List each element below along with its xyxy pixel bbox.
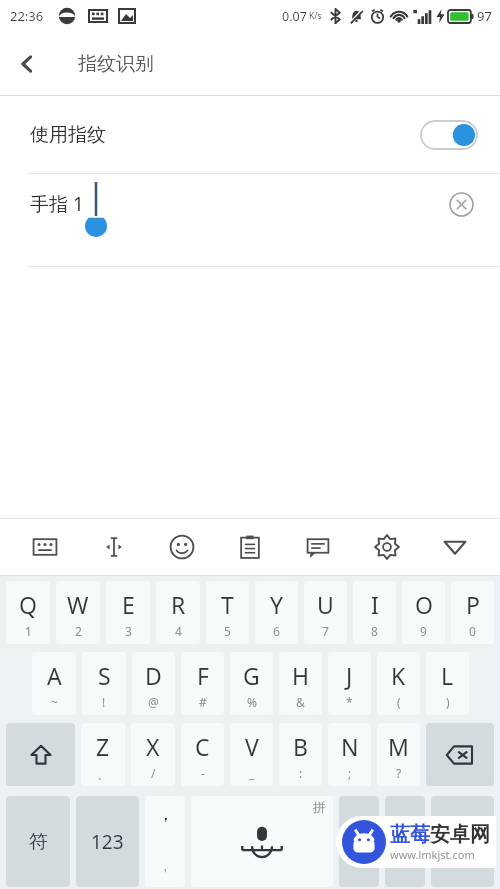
button[interactable]: K bbox=[377, 652, 420, 715]
button[interactable]: P bbox=[451, 581, 494, 644]
button[interactable]: W bbox=[56, 581, 100, 644]
staticText: Y bbox=[270, 589, 284, 620]
button[interactable]: R bbox=[156, 581, 200, 644]
staticText: 7 bbox=[322, 623, 329, 639]
button[interactable]: G bbox=[230, 652, 273, 715]
staticText: I bbox=[371, 589, 379, 620]
staticText: ~ bbox=[51, 694, 58, 710]
staticText: 符 bbox=[29, 830, 48, 854]
button[interactable]: Y bbox=[255, 581, 298, 644]
button[interactable]: ， bbox=[145, 796, 185, 887]
staticText: - bbox=[201, 765, 205, 781]
button[interactable]: 123 bbox=[76, 796, 139, 887]
button[interactable]: N bbox=[328, 723, 371, 786]
staticText: B bbox=[293, 731, 308, 762]
staticText: F bbox=[197, 660, 209, 691]
staticText: & bbox=[296, 694, 305, 710]
button[interactable]: Space, voice input bbox=[191, 796, 333, 887]
staticText: 使用指纹 bbox=[30, 123, 106, 147]
button[interactable]: E bbox=[106, 581, 150, 644]
button[interactable]: O bbox=[402, 581, 445, 644]
staticText: 123 bbox=[91, 829, 124, 855]
button[interactable]: H bbox=[279, 652, 322, 715]
staticText: ' bbox=[164, 865, 167, 881]
staticText: D bbox=[145, 660, 162, 691]
staticText: 3 bbox=[125, 623, 132, 639]
button[interactable]: Back bbox=[0, 37, 54, 91]
button[interactable]: Hide keyboard bbox=[432, 524, 478, 570]
button[interactable]: Shift bbox=[6, 723, 75, 786]
staticText: 6 bbox=[273, 623, 280, 639]
button[interactable]: Clear text bbox=[444, 187, 478, 221]
staticText: 8 bbox=[371, 623, 378, 639]
staticText: 5 bbox=[224, 623, 231, 639]
staticText: / bbox=[151, 765, 156, 781]
button[interactable]: I bbox=[353, 581, 396, 644]
button[interactable]: Backspace bbox=[426, 723, 494, 786]
staticText: L bbox=[441, 660, 454, 691]
button[interactable]: Messages bbox=[295, 524, 341, 570]
staticText: 指纹识别 bbox=[78, 52, 154, 76]
staticText: K/s bbox=[309, 10, 322, 22]
button[interactable]: J bbox=[328, 652, 371, 715]
staticText: O bbox=[415, 589, 433, 620]
staticText: 2 bbox=[75, 623, 82, 639]
staticText: X bbox=[146, 731, 160, 762]
button[interactable]: Emoji bbox=[159, 524, 205, 570]
button[interactable]: A bbox=[32, 652, 76, 715]
staticText: R bbox=[171, 589, 186, 620]
staticText: Q bbox=[19, 589, 37, 620]
staticText: G bbox=[243, 660, 260, 691]
staticText: U bbox=[317, 589, 334, 620]
staticText: 97 bbox=[477, 7, 492, 25]
staticText: P bbox=[466, 589, 480, 620]
button[interactable]: Clipboard bbox=[227, 524, 273, 570]
button[interactable]: V bbox=[230, 723, 273, 786]
staticText: @ bbox=[148, 694, 159, 710]
button[interactable]: 符 bbox=[6, 796, 70, 887]
button[interactable]: F bbox=[181, 652, 224, 715]
staticText: M bbox=[388, 731, 409, 762]
staticText: ? bbox=[396, 765, 402, 781]
button[interactable]: 使用指纹 bbox=[0, 96, 500, 173]
button[interactable]: D bbox=[132, 652, 175, 715]
staticText: 1 bbox=[25, 623, 32, 639]
button[interactable] bbox=[339, 796, 379, 887]
button[interactable]: 手指 1 bbox=[30, 174, 478, 234]
staticText: A bbox=[47, 660, 62, 691]
staticText: % bbox=[247, 694, 257, 710]
staticText: : bbox=[299, 765, 303, 781]
staticText: ! bbox=[102, 694, 106, 710]
button[interactable]: B bbox=[279, 723, 322, 786]
button[interactable] bbox=[385, 796, 425, 887]
button[interactable]: S bbox=[82, 652, 126, 715]
staticText: 22:36 bbox=[10, 7, 44, 25]
staticText: Z bbox=[96, 731, 110, 762]
staticText: ( bbox=[397, 694, 401, 710]
button[interactable]: T bbox=[206, 581, 249, 644]
button[interactable]: Z bbox=[81, 723, 125, 786]
button[interactable]: C bbox=[181, 723, 224, 786]
button[interactable]: Keyboard bbox=[22, 524, 68, 570]
staticText: S bbox=[98, 660, 111, 691]
staticText: H bbox=[292, 660, 310, 691]
staticText: ) bbox=[446, 694, 450, 710]
staticText: W bbox=[67, 589, 89, 620]
staticText: K bbox=[391, 660, 406, 691]
button[interactable]: Settings bbox=[364, 524, 410, 570]
button[interactable]: M bbox=[377, 723, 420, 786]
staticText: 0 bbox=[469, 623, 476, 639]
button[interactable]: Move cursor bbox=[91, 524, 137, 570]
staticText: E bbox=[122, 589, 135, 620]
staticText: ; bbox=[348, 765, 352, 781]
staticText: T bbox=[221, 589, 234, 620]
button[interactable]: X bbox=[131, 723, 175, 786]
staticText: N bbox=[341, 731, 359, 762]
staticText: 0.07 bbox=[282, 8, 307, 25]
button[interactable] bbox=[431, 796, 494, 887]
staticText: 拼 bbox=[313, 799, 326, 815]
staticText: 、 bbox=[97, 766, 109, 781]
button[interactable]: L bbox=[426, 652, 469, 715]
button[interactable]: Q bbox=[6, 581, 50, 644]
button[interactable]: U bbox=[304, 581, 347, 644]
